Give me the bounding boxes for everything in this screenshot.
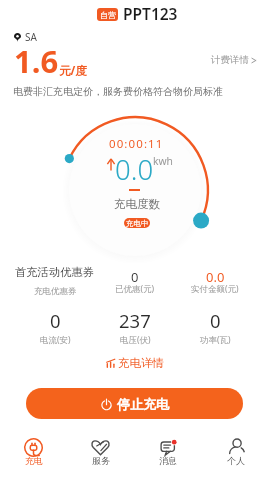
button[interactable]: 服务 [67, 432, 134, 480]
staticText: 计费详情 [211, 54, 249, 66]
staticText: 功率(瓦) [200, 334, 231, 346]
staticText: 服务 [92, 455, 110, 466]
staticText: 首充活动优惠券 [15, 265, 95, 279]
staticText: 已优惠(元) [115, 283, 155, 295]
staticText: PPT123 [123, 3, 178, 24]
staticText: 元/度 [59, 63, 87, 79]
staticText: 充电 [25, 455, 43, 466]
staticText: 充电中 [126, 219, 149, 228]
staticText: 237 [119, 308, 151, 333]
button[interactable]: 237 [95, 309, 175, 346]
staticText: 自营 [100, 10, 116, 20]
staticText: 00:00:11 [109, 136, 164, 152]
staticText: 1.6 [14, 40, 59, 82]
button[interactable]: 停止充电 [26, 388, 243, 419]
staticText: 停止充电 [117, 396, 169, 412]
staticText: 0 [131, 268, 139, 286]
staticText: 电流(安) [40, 334, 71, 346]
staticText: 充电优惠券 [34, 286, 77, 297]
button[interactable]: 0 [15, 309, 95, 346]
button[interactable]: 个人 [202, 432, 270, 480]
staticText: 0.0 [115, 151, 154, 188]
staticText: 电费非汇充电定价，服务费价格符合物价局标准 [13, 85, 223, 98]
staticText: 电压(伏) [120, 334, 151, 346]
button[interactable]: 消息 [134, 432, 202, 480]
staticText: 消息 [159, 455, 177, 466]
staticText: kwh [153, 154, 173, 168]
staticText: 个人 [227, 455, 245, 466]
button[interactable]: 充电 [0, 432, 67, 480]
staticText: 0 [210, 308, 221, 333]
staticText: 充电详情 [118, 356, 164, 370]
button[interactable]: 充电详情 [106, 356, 164, 370]
button[interactable]: 0 [95, 265, 175, 295]
staticText: 充电度数 [114, 197, 160, 211]
button[interactable]: 首充活动优惠券 [15, 265, 95, 297]
staticText: SA [25, 30, 37, 44]
staticText: 0 [50, 308, 61, 333]
button[interactable]: 0.0 [175, 265, 255, 295]
button[interactable]: 0 [175, 309, 255, 346]
staticText: 实付金额(元) [191, 283, 239, 295]
button[interactable]: 计费详情 [211, 54, 257, 66]
staticText: 0.0 [206, 268, 225, 286]
